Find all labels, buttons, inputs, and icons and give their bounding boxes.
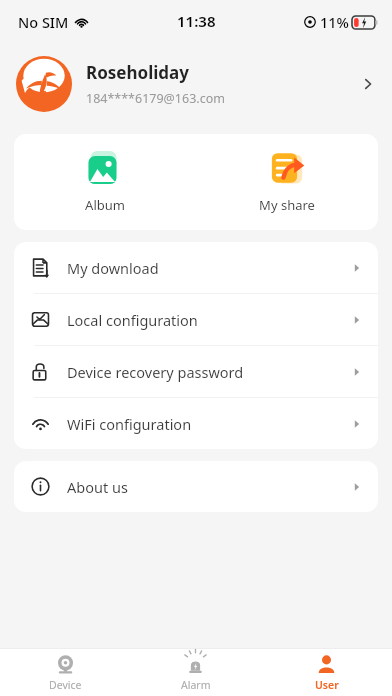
staticText: Alarm	[181, 678, 211, 692]
staticText: My download	[67, 258, 352, 278]
button[interactable]: User	[261, 649, 392, 696]
button[interactable]: Roseholiday	[0, 44, 392, 124]
staticText: Album	[85, 196, 125, 214]
staticText: 184****6179@163.com	[86, 90, 225, 107]
staticText: Roseholiday	[86, 61, 189, 84]
button[interactable]: My share	[196, 134, 378, 230]
staticText: 11:38	[177, 11, 216, 31]
button[interactable]: Album	[14, 134, 196, 230]
button[interactable]: Alarm	[130, 649, 261, 696]
staticText: User	[315, 678, 339, 692]
staticText: No SIM	[18, 12, 69, 32]
button[interactable]: My download	[14, 242, 378, 294]
staticText: Device recovery password	[67, 362, 352, 382]
button[interactable]: About us	[14, 461, 378, 512]
button[interactable]: WiFi configuration	[14, 398, 378, 449]
staticText: 11%	[320, 12, 349, 32]
button[interactable]: Device	[0, 649, 130, 696]
staticText: Local configuration	[67, 310, 352, 330]
staticText: My share	[259, 196, 315, 214]
button[interactable]: Device recovery password	[14, 346, 378, 398]
button[interactable]: Local configuration	[14, 294, 378, 346]
staticText: WiFi configuration	[67, 414, 352, 434]
staticText: Device	[49, 678, 82, 692]
staticText: About us	[67, 477, 352, 497]
